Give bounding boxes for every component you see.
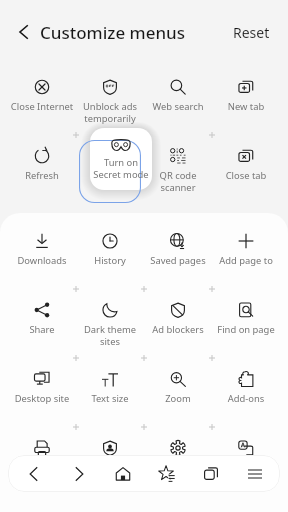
button[interactable]: Home — [101, 455, 145, 492]
staticText: Unblock ads temporarily — [76, 100, 144, 125]
button[interactable]: Settings — [144, 427, 212, 496]
staticText: Add page to — [212, 254, 280, 267]
button[interactable]: Find on page — [212, 289, 280, 358]
staticText: Ad blockers — [144, 323, 212, 336]
staticText: Web search — [144, 100, 212, 113]
staticText: Reset — [233, 23, 270, 42]
button[interactable]: Downloads — [8, 220, 76, 289]
button[interactable]: Back — [11, 455, 56, 492]
button[interactable]: Close tab — [212, 135, 280, 204]
staticText: Zoom — [144, 392, 212, 405]
button[interactable]: Desktop site — [8, 358, 76, 427]
button[interactable]: Share — [8, 289, 76, 358]
button[interactable]: Unblock ads temporarily — [76, 66, 144, 135]
staticText: New tab — [212, 100, 280, 113]
button[interactable]: QR code scanner — [144, 135, 212, 204]
button[interactable]: Back — [8, 17, 38, 47]
staticText: Saved pages — [144, 254, 212, 267]
staticText: Turn on Secret mode — [90, 156, 152, 181]
button[interactable]: Web search — [144, 66, 212, 135]
button[interactable]: Add-ons — [212, 358, 280, 427]
staticText: QR code scanner — [144, 169, 212, 194]
staticText: Desktop site — [8, 392, 76, 405]
staticText: History — [76, 254, 144, 267]
button[interactable]: Forward — [56, 455, 101, 492]
staticText: Share — [8, 323, 76, 336]
staticText: Close tab — [212, 169, 280, 182]
button[interactable]: Translate — [212, 427, 280, 496]
staticText: Text size — [76, 392, 144, 405]
button[interactable]: Tabs — [189, 455, 233, 492]
staticText: Downloads — [8, 254, 76, 267]
staticText: Dark theme sites — [76, 323, 144, 348]
staticText: Find on page — [212, 323, 280, 336]
button[interactable]: Bookmarks — [145, 455, 189, 492]
button[interactable]: Text size — [76, 358, 144, 427]
button[interactable] — [90, 128, 152, 190]
button[interactable]: Reset — [215, 14, 288, 51]
staticText: Refresh — [8, 169, 76, 182]
button[interactable]: Dark theme sites — [76, 289, 144, 358]
button[interactable]: History — [76, 220, 144, 289]
button[interactable]: Privacy — [76, 427, 144, 496]
button[interactable]: New tab — [212, 66, 280, 135]
staticText: Close Internet — [8, 100, 76, 113]
button[interactable]: Menu — [233, 455, 277, 492]
button[interactable]: Refresh — [8, 135, 76, 204]
button[interactable]: Saved pages — [144, 220, 212, 289]
button[interactable]: Close Internet — [8, 66, 76, 135]
button[interactable]: Add page to — [212, 220, 280, 289]
staticText: Customize menus — [40, 21, 186, 44]
staticText: Add-ons — [212, 392, 280, 405]
button[interactable]: Print — [8, 427, 76, 496]
button[interactable]: Zoom — [144, 358, 212, 427]
button[interactable]: Ad blockers — [144, 289, 212, 358]
